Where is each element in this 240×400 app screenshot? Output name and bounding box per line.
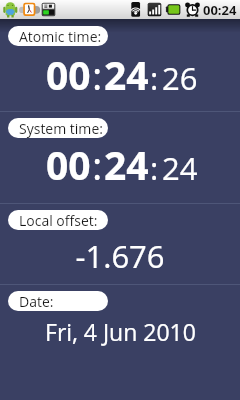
staticText: System time:	[19, 119, 103, 138]
staticText: Atomic time:	[19, 27, 102, 46]
other: Mobile data	[39, 0, 58, 19]
button[interactable]: System time:	[8, 118, 108, 138]
other: Clock	[20, 0, 39, 19]
staticText: Local offset:	[19, 211, 98, 230]
staticText: :	[92, 48, 103, 101]
other: Battery	[164, 0, 183, 19]
other: Alarm set	[183, 0, 202, 19]
button[interactable]: Date:	[8, 291, 108, 311]
button[interactable]: Local offset:	[8, 210, 108, 230]
staticText: Date:	[19, 292, 54, 311]
staticText: :	[150, 57, 159, 99]
staticText: 00	[46, 138, 91, 191]
staticText: 24	[162, 147, 198, 189]
other: Wi-Fi	[126, 0, 145, 19]
staticText: Fri, 4 Jun 2010	[45, 316, 196, 347]
staticText: 24	[104, 138, 149, 191]
other: Signal	[145, 0, 164, 19]
staticText: :	[150, 147, 159, 189]
staticText: 26	[162, 57, 198, 99]
staticText: -1.676	[75, 235, 165, 277]
other: Download	[1, 0, 20, 19]
button[interactable]: Atomic time:	[8, 26, 108, 46]
staticText: 00:24	[203, 1, 237, 19]
staticText: 24	[104, 48, 149, 101]
staticText: :	[92, 138, 103, 191]
staticText: 00	[46, 48, 91, 101]
